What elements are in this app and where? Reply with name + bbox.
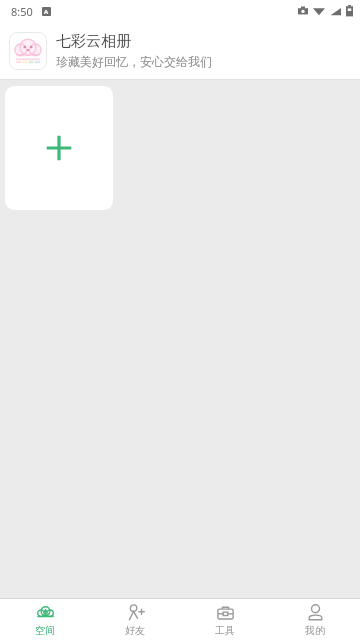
staticText: 珍藏美好回忆，安心交给我们: [56, 54, 212, 69]
button[interactable]: 我的: [270, 599, 360, 640]
staticText: 空间: [35, 624, 55, 637]
button[interactable]: 工具: [180, 599, 270, 640]
staticText: 我的: [305, 624, 325, 637]
button[interactable]: 七彩云相册: [0, 22, 360, 79]
button[interactable]: 空间: [0, 599, 90, 640]
staticText: 好友: [125, 624, 145, 637]
button[interactable]: 好友: [90, 599, 180, 640]
staticText: A: [44, 8, 49, 16]
button[interactable]: 添加相册: [5, 86, 113, 210]
staticText: 工具: [215, 624, 235, 637]
staticText: 8:50: [11, 4, 33, 19]
staticText: 七彩云相册: [56, 32, 131, 51]
